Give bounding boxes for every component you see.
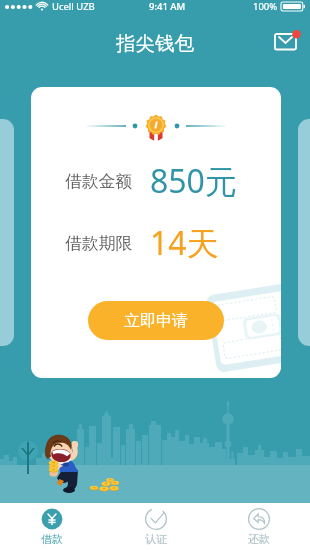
button[interactable]: 借款	[0, 504, 104, 549]
staticText: 14天	[150, 221, 219, 265]
staticText: 借款	[41, 532, 63, 546]
staticText: 借款金额	[65, 171, 133, 192]
staticText: 认证	[145, 532, 167, 546]
button[interactable]: 认证	[104, 504, 207, 549]
staticText: 立即申请	[124, 311, 188, 331]
button[interactable]: 立即申请	[88, 301, 224, 340]
button[interactable]: 还款	[207, 504, 310, 549]
button[interactable]: Messages	[270, 25, 302, 57]
staticText: 850元	[150, 159, 237, 203]
staticText: 100%	[253, 0, 278, 13]
staticText: 指尖钱包	[116, 31, 194, 56]
staticText: 借款期限	[65, 233, 133, 254]
staticText: 还款	[248, 532, 270, 546]
staticText: Ucell UZB	[52, 0, 95, 13]
staticText: 9:41 AM	[149, 0, 186, 13]
